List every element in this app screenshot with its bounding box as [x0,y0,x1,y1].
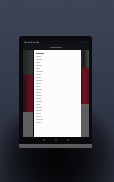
button[interactable] [23,44,89,50]
